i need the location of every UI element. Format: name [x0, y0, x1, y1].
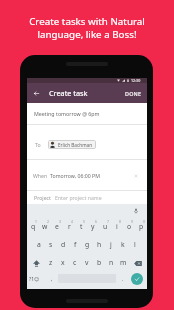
staticText: , — [51, 275, 53, 282]
button[interactable]: . — [116, 272, 129, 289]
staticText: o — [127, 222, 132, 231]
button[interactable]: 4 — [63, 218, 75, 236]
staticText: Create tasks with Natural — [29, 15, 145, 28]
staticText: 1 — [35, 219, 37, 224]
staticText: h — [97, 240, 102, 249]
button[interactable]: z — [45, 254, 57, 272]
button[interactable]: To — [27, 125, 147, 159]
staticText: p — [139, 222, 144, 231]
button[interactable]: v — [81, 254, 93, 272]
staticText: Meeting tomorrow @ 6pm — [34, 110, 100, 117]
button[interactable]: Project — [27, 191, 147, 204]
staticText: 2 — [47, 219, 49, 224]
staticText: language, like a Boss! — [37, 28, 137, 41]
staticText: To — [35, 141, 41, 148]
button[interactable]: k — [117, 236, 129, 254]
staticText: Erlich Bachman — [58, 142, 93, 148]
staticText: 5 — [83, 219, 85, 224]
staticText: b — [97, 258, 102, 267]
staticText: Create task — [49, 88, 88, 98]
button[interactable]: s — [45, 236, 57, 254]
staticText: w — [42, 222, 48, 231]
staticText: Project — [34, 194, 51, 201]
staticText: 6 — [95, 219, 97, 224]
button[interactable]: Back — [30, 87, 43, 100]
staticText: m — [120, 258, 127, 267]
button[interactable]: 9 — [123, 218, 135, 236]
button[interactable]: 7 — [99, 218, 111, 236]
staticText: g — [85, 240, 90, 249]
staticText: s — [49, 240, 53, 249]
staticText: k — [121, 240, 125, 249]
staticText: 3 — [59, 219, 61, 224]
button[interactable]: c — [69, 254, 81, 272]
button[interactable]: DONE — [120, 83, 147, 103]
staticText: i — [116, 222, 118, 231]
staticText: DONE — [125, 90, 142, 97]
button[interactable]: x — [57, 254, 69, 272]
button[interactable]: 5 — [75, 218, 87, 236]
button[interactable]: h — [93, 236, 105, 254]
staticText: Tomorrow, 06:00 PM — [50, 172, 100, 179]
button[interactable]: , — [46, 272, 58, 289]
staticText: n — [109, 258, 114, 267]
staticText: 9 — [131, 219, 133, 224]
staticText: 0 — [143, 219, 145, 224]
staticText: 4 — [71, 219, 73, 224]
staticText: c — [73, 258, 77, 267]
button[interactable]: 0 — [135, 218, 147, 236]
staticText: 7 — [107, 219, 109, 224]
button[interactable]: 2 — [39, 218, 51, 236]
staticText: z — [49, 258, 53, 267]
button[interactable]: b — [93, 254, 105, 272]
button[interactable]: a — [33, 236, 45, 254]
staticText: Enter project name — [55, 194, 102, 201]
button[interactable]: Enter — [129, 272, 147, 289]
button[interactable]: Backspace — [129, 254, 147, 272]
staticText: x — [61, 258, 65, 267]
button[interactable]: 3 — [51, 218, 63, 236]
staticText: 8 — [119, 219, 121, 224]
staticText: a — [37, 240, 41, 249]
staticText: f — [74, 240, 77, 249]
staticText: e — [55, 222, 59, 231]
button[interactable]: ?1☺ — [27, 272, 46, 289]
staticText: d — [61, 240, 66, 249]
button[interactable]: Erlich Bachman — [48, 140, 96, 149]
button[interactable]: f — [69, 236, 81, 254]
button[interactable]: Clear date — [132, 172, 139, 179]
button[interactable]: l — [129, 236, 141, 254]
button[interactable]: m — [117, 254, 129, 272]
staticText: ?1☺ — [29, 276, 40, 283]
button[interactable]: Meeting tomorrow @ 6pm — [27, 103, 147, 124]
button[interactable]: g — [81, 236, 93, 254]
button[interactable]: Voice input — [132, 207, 140, 215]
staticText: When — [33, 172, 48, 179]
staticText: r — [68, 222, 71, 231]
button[interactable]: j — [105, 236, 117, 254]
button[interactable]: 8 — [111, 218, 123, 236]
staticText: 12:30 — [131, 78, 141, 83]
staticText: . — [122, 275, 124, 282]
staticText: j — [110, 240, 112, 249]
staticText: l — [134, 240, 136, 249]
button[interactable]: n — [105, 254, 117, 272]
button[interactable]: Shift — [27, 254, 45, 272]
staticText: u — [103, 222, 108, 231]
staticText: t — [80, 222, 83, 231]
button[interactable]: d — [57, 236, 69, 254]
staticText: y — [91, 222, 95, 231]
button[interactable]: When — [27, 160, 147, 190]
staticText: v — [85, 258, 89, 267]
staticText: q — [31, 222, 36, 231]
button[interactable]: 6 — [87, 218, 99, 236]
button[interactable]: 1 — [27, 218, 39, 236]
